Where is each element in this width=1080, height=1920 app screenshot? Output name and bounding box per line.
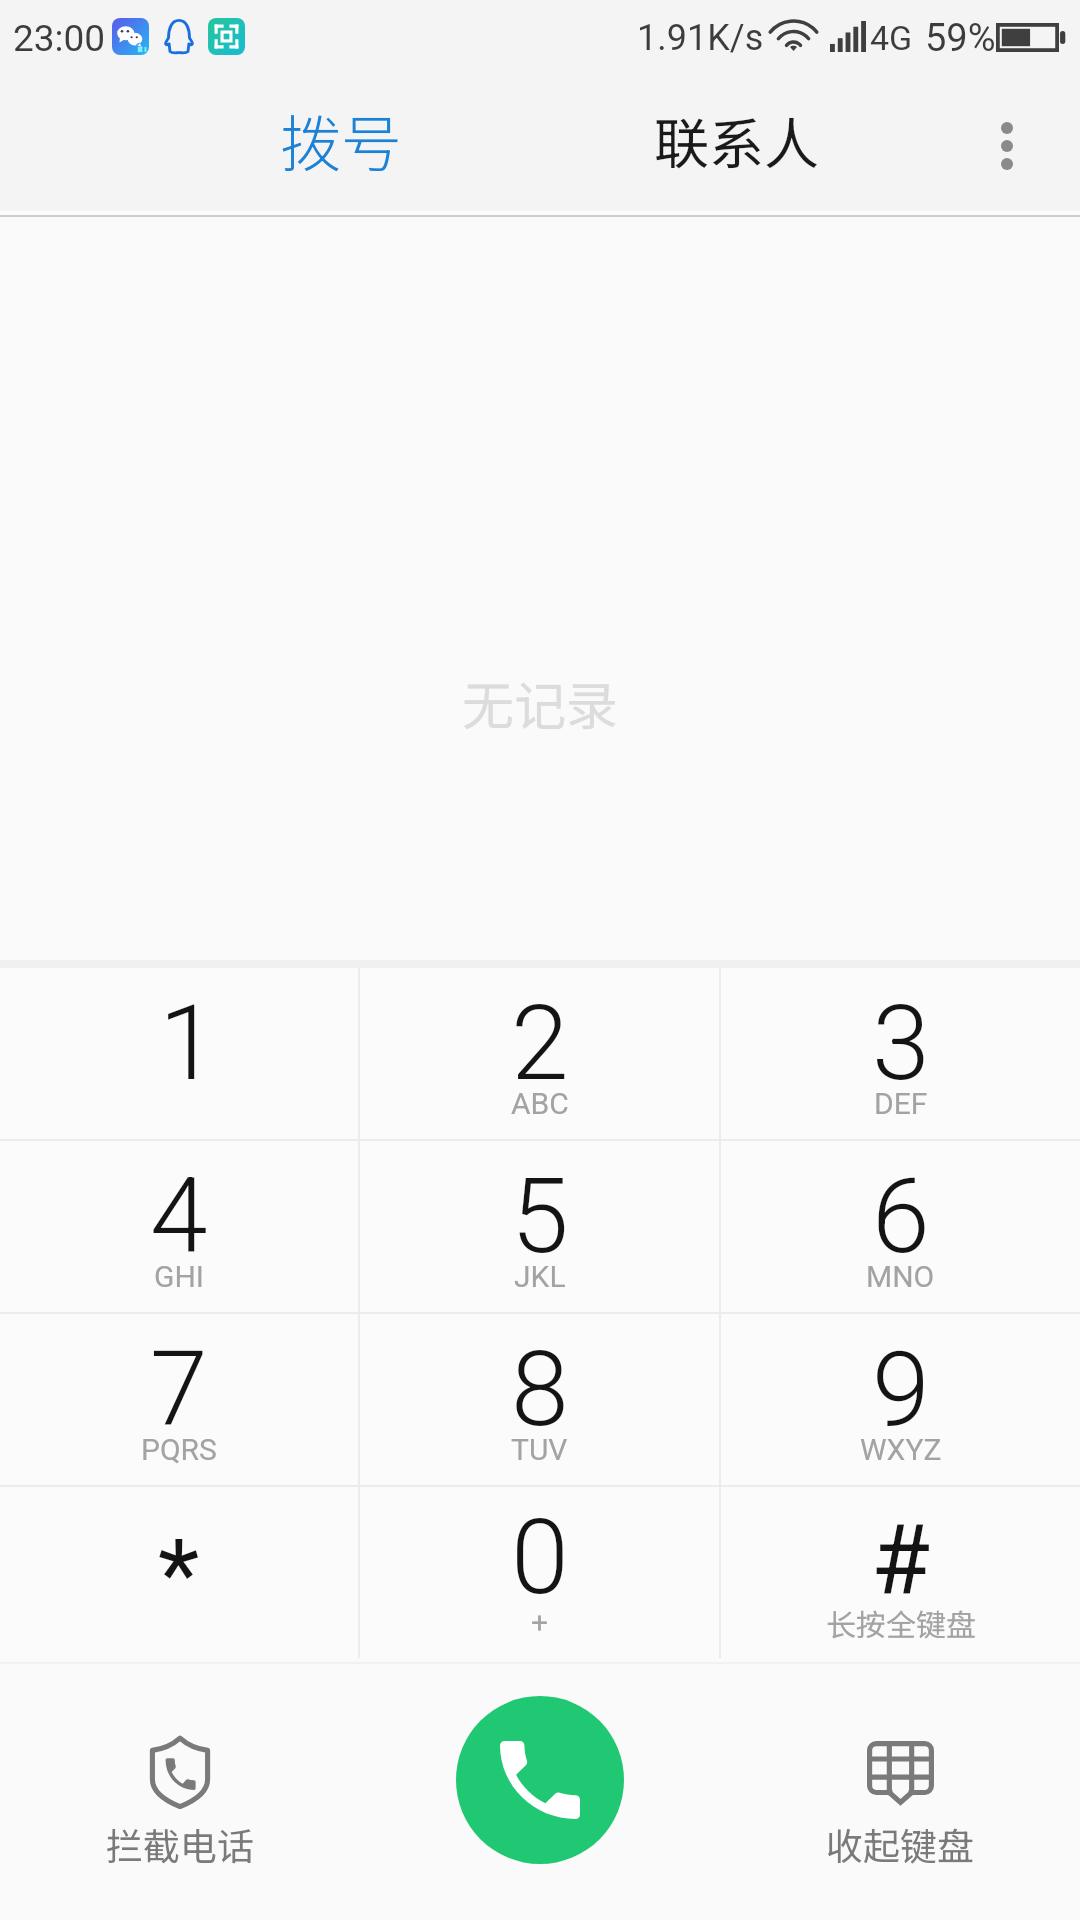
button[interactable]: 6 (721, 1141, 1080, 1312)
button[interactable]: 8 (360, 1314, 719, 1485)
staticText: WXYZ (860, 1432, 942, 1467)
button[interactable]: 联系人 (541, 76, 932, 217)
staticText: 23:00 (13, 17, 106, 60)
button[interactable]: 5 (360, 1141, 719, 1312)
button[interactable]: # (721, 1487, 1080, 1658)
button[interactable]: 2 (360, 968, 719, 1139)
staticText: DEF (874, 1086, 928, 1121)
staticText: 3 (872, 983, 930, 1105)
staticText: 7 (150, 1329, 208, 1451)
staticText: * (158, 1519, 200, 1632)
staticText: 5 (511, 1156, 569, 1278)
staticText: 6 (872, 1156, 930, 1278)
staticText: 拦截电话 (106, 1817, 254, 1871)
button[interactable]: More options (948, 76, 1068, 217)
staticText: PQRS (141, 1432, 217, 1467)
staticText: # (871, 1504, 931, 1617)
button[interactable]: * (0, 1487, 358, 1658)
staticText: ABC (511, 1086, 569, 1121)
button[interactable]: 拦截电话 (0, 1658, 360, 1920)
button[interactable]: 4 (0, 1141, 358, 1312)
staticText: 无记录 (462, 665, 619, 740)
staticText: 8 (511, 1329, 569, 1451)
button[interactable]: 3 (721, 968, 1080, 1139)
staticText: 长按全键盘 (826, 1601, 976, 1644)
staticText: 1 (159, 983, 217, 1105)
button[interactable]: 9 (721, 1314, 1080, 1485)
staticText: TUV (511, 1432, 568, 1467)
button[interactable]: 1 (0, 968, 358, 1139)
staticText: 9 (872, 1329, 930, 1451)
staticText: 拨号 (280, 95, 403, 183)
staticText: GHI (154, 1259, 204, 1294)
staticText: 4G (870, 18, 913, 58)
staticText: 1.91K/s (637, 17, 764, 59)
staticText: MNO (866, 1259, 935, 1294)
button[interactable]: 拨号 (0, 76, 682, 217)
staticText: 4 (150, 1156, 208, 1278)
staticText: + (531, 1605, 549, 1640)
button[interactable]: 收起键盘 (720, 1658, 1080, 1920)
staticText: 59% (925, 16, 996, 61)
staticText: 联系人 (654, 100, 820, 180)
staticText: 0 (511, 1497, 569, 1619)
button[interactable]: 0 (360, 1487, 719, 1658)
staticText: JKL (514, 1259, 566, 1294)
button[interactable]: Call (456, 1696, 624, 1864)
button[interactable]: 7 (0, 1314, 358, 1485)
staticText: 收起键盘 (826, 1817, 974, 1871)
staticText: 2 (511, 983, 569, 1105)
